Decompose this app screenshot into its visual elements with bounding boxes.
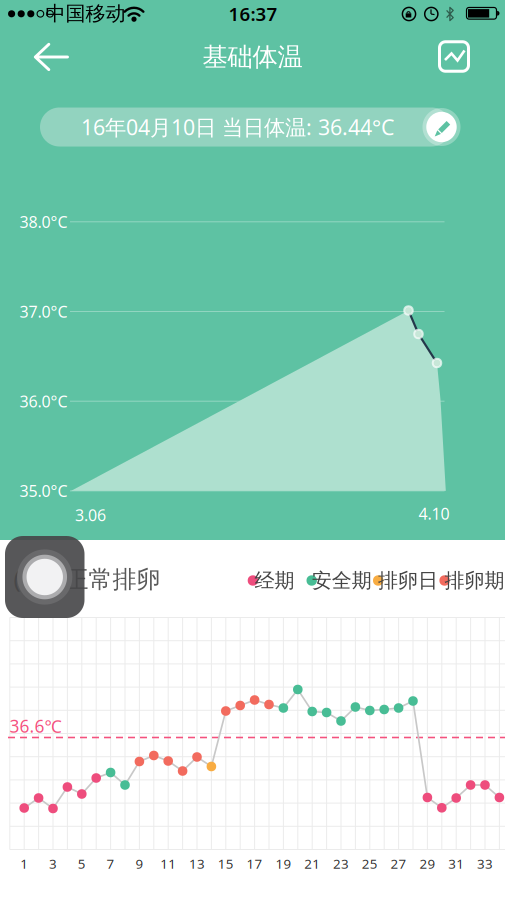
- staticText: 排卵日: [378, 568, 438, 593]
- button[interactable]: 16年04月10日 当日体温: 36.44°C: [40, 105, 464, 149]
- staticText: 4.10: [418, 503, 449, 524]
- staticText: 3.06: [75, 504, 106, 526]
- staticText: 25: [362, 855, 378, 872]
- staticText: (1/6)正常排卵: [13, 563, 160, 594]
- staticText: 经期: [254, 568, 294, 593]
- staticText: 15: [218, 855, 234, 872]
- staticText: 排卵期: [444, 568, 504, 593]
- staticText: 9: [135, 855, 143, 872]
- staticText: 27: [391, 855, 407, 872]
- staticText: 5: [78, 855, 86, 872]
- staticText: 基础体温: [202, 41, 302, 72]
- staticText: 36.6℃: [9, 714, 61, 737]
- staticText: 安全期: [312, 568, 372, 593]
- staticText: 31: [448, 855, 464, 872]
- staticText: 13: [189, 855, 205, 872]
- staticText: 36.0°C: [19, 391, 67, 412]
- staticText: 35.0°C: [19, 480, 67, 501]
- staticText: 1: [20, 855, 28, 872]
- staticText: 33: [477, 855, 493, 872]
- staticText: 中国移动: [45, 1, 125, 26]
- staticText: 38.0°C: [19, 211, 67, 232]
- staticText: 7: [107, 855, 115, 872]
- staticText: 29: [419, 855, 435, 872]
- staticText: 17: [247, 855, 263, 872]
- button[interactable]: [28, 39, 72, 75]
- staticText: 19: [275, 855, 291, 872]
- staticText: 16:37: [228, 1, 277, 26]
- button[interactable]: [5, 536, 85, 618]
- button[interactable]: [434, 36, 474, 76]
- staticText: 37.0°C: [19, 301, 67, 322]
- staticText: 3: [49, 855, 57, 872]
- staticText: 21: [304, 855, 320, 872]
- staticText: 16年04月10日 当日体温: 36.44°C: [81, 113, 394, 141]
- staticText: 11: [160, 855, 176, 872]
- staticText: 23: [333, 855, 349, 872]
